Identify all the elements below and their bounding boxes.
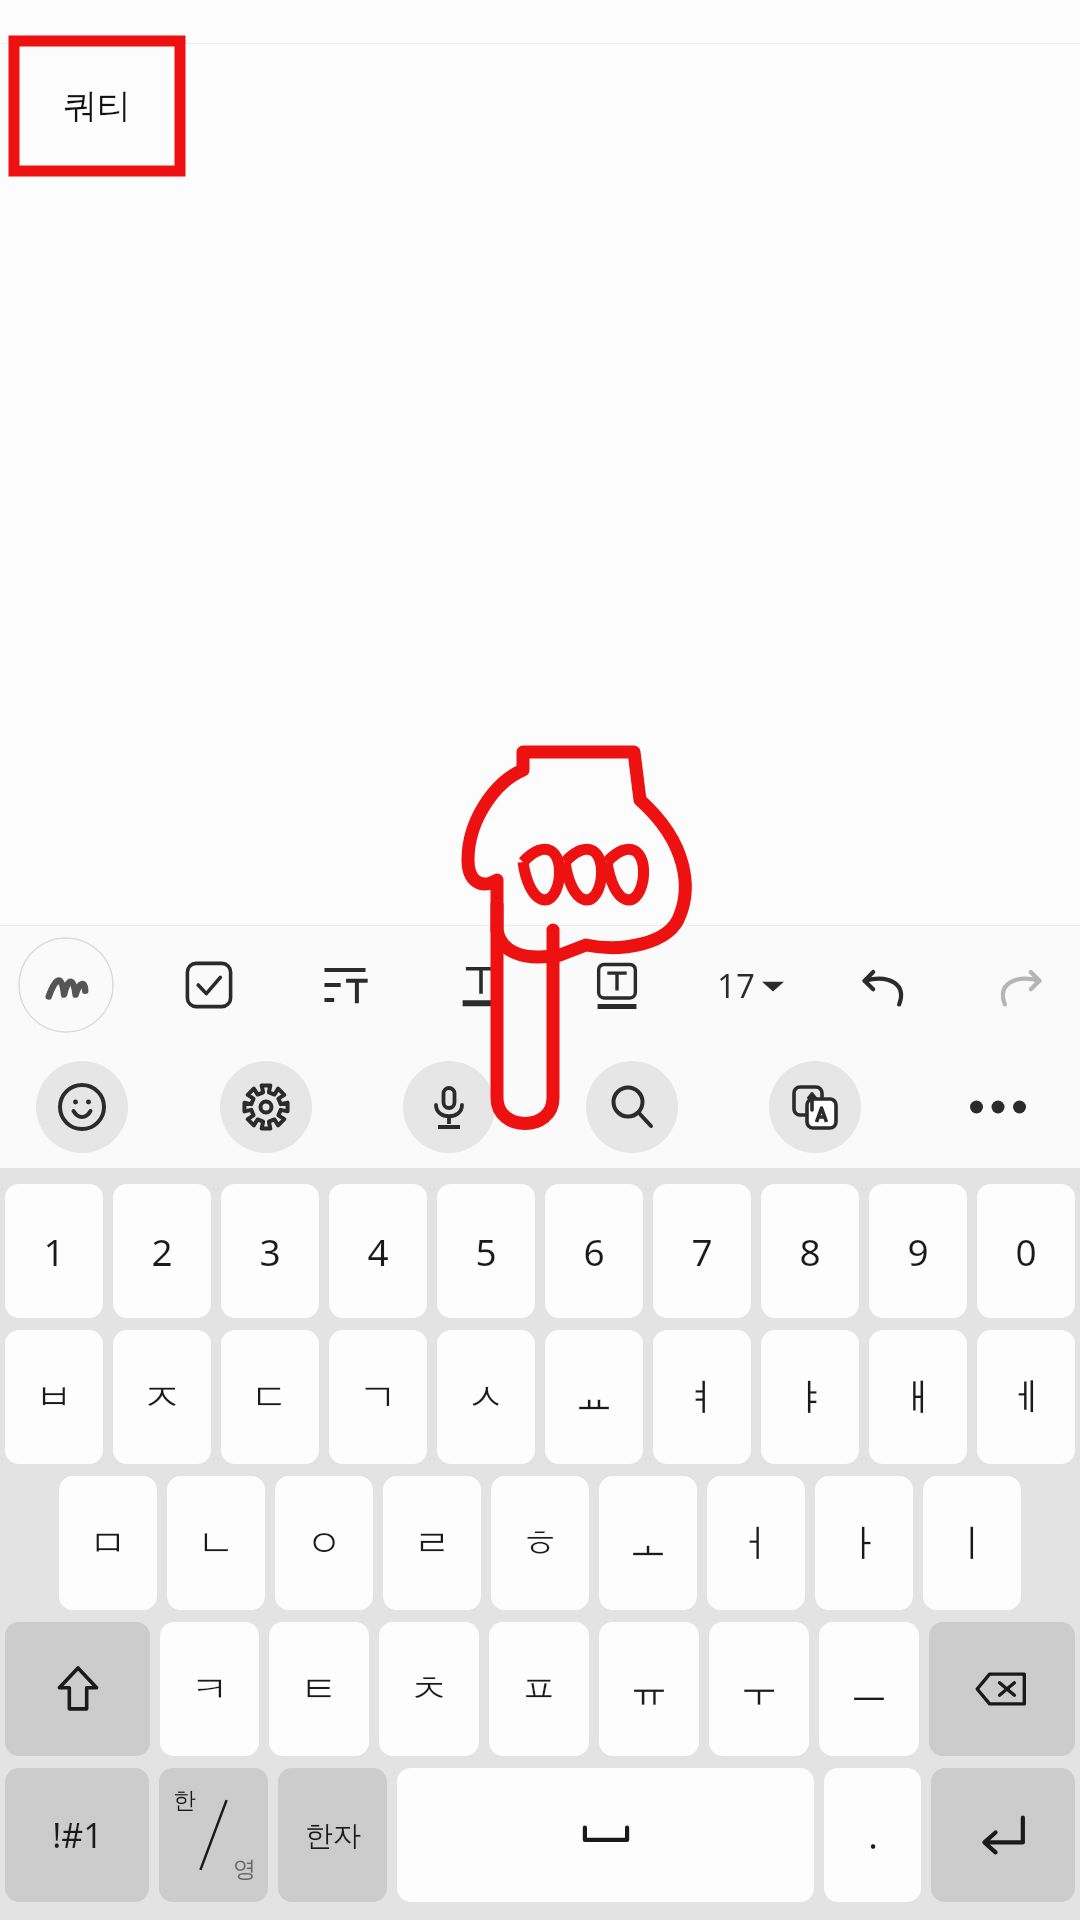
staticText: . [868,1811,878,1860]
staticText: 0 [1015,1226,1037,1276]
staticText: 한자 [305,1818,361,1853]
staticText: ㅛ [575,1373,613,1421]
button[interactable]: . [824,1768,921,1902]
button[interactable]: Translate [769,1061,861,1153]
button[interactable]: ㅇ [275,1476,373,1610]
button[interactable]: Undo [842,943,926,1027]
button[interactable]: ㅜ [709,1622,809,1756]
staticText: ㅁ [89,1519,127,1567]
button[interactable]: Voice input [403,1061,495,1153]
button[interactable]: ㅛ [545,1330,643,1464]
staticText: ㅅ [467,1373,505,1421]
button[interactable]: 3 [221,1184,319,1318]
staticText: ㅂ [35,1373,73,1421]
staticText: ㅌ [300,1665,338,1713]
button[interactable]: ㄷ [221,1330,319,1464]
staticText: 7 [691,1226,713,1276]
staticText: ㅠ [630,1665,668,1713]
button[interactable]: ㅈ [113,1330,211,1464]
staticText: ㄷ [251,1373,289,1421]
button[interactable]: ㄴ [167,1476,265,1610]
button[interactable]: 9 [869,1184,967,1318]
staticText: ㅇ [305,1519,343,1567]
staticText: ㄴ [197,1519,235,1567]
staticText: ㅡ [850,1665,888,1713]
button[interactable]: Settings [220,1061,312,1153]
button[interactable]: ㅁ [59,1476,157,1610]
button[interactable]: ㄹ [383,1476,481,1610]
staticText: ㅔ [1007,1373,1045,1421]
button[interactable]: ㅌ [269,1622,369,1756]
button[interactable]: Search [586,1061,678,1153]
button[interactable]: ㅅ [437,1330,535,1464]
staticText: ㅐ [899,1373,937,1421]
staticText: 4 [367,1226,389,1276]
button[interactable]: ㅠ [599,1622,699,1756]
button[interactable]: ㅏ [815,1476,913,1610]
staticText: ㄹ [413,1519,451,1567]
button[interactable]: ㅗ [599,1476,697,1610]
button[interactable]: ㅓ [707,1476,805,1610]
staticText: 8 [799,1226,821,1276]
button[interactable]: ㅣ [923,1476,1021,1610]
button[interactable]: Redo [978,943,1062,1027]
button[interactable]: Text box [575,943,659,1027]
button[interactable]: Space [397,1768,814,1902]
button[interactable]: Enter [931,1768,1075,1902]
staticText: ㅍ [520,1665,558,1713]
staticText: 1 [43,1226,65,1276]
button[interactable]: 8 [761,1184,859,1318]
button[interactable]: 17 [711,955,790,1016]
staticText: ㅣ [953,1519,991,1567]
staticText: 5 [475,1226,497,1276]
button[interactable]: ㄱ [329,1330,427,1464]
staticText: ㅏ [845,1519,883,1567]
button[interactable]: ㅡ [819,1622,919,1756]
button[interactable]: ㅋ [160,1622,259,1756]
staticText: ㅜ [740,1665,778,1713]
button[interactable]: 0 [977,1184,1075,1318]
button[interactable]: Korean English toggle [159,1768,268,1902]
staticText: 쿼티 [63,85,131,128]
staticText: 17 [717,963,755,1008]
button[interactable]: Paragraph style [303,943,387,1027]
button[interactable]: ㅊ [379,1622,479,1756]
button[interactable]: More options [952,1061,1044,1153]
button[interactable]: ㅐ [869,1330,967,1464]
button[interactable]: Handwriting [18,937,114,1033]
button[interactable]: ㅂ [5,1330,103,1464]
button[interactable]: 한자 [278,1768,387,1902]
staticText: ㅗ [629,1519,667,1567]
button[interactable]: Text style [439,943,523,1027]
staticText: ㄱ [359,1373,397,1421]
staticText: 영 [233,1855,256,1884]
staticText: ㅓ [737,1519,775,1567]
button[interactable]: 4 [329,1184,427,1318]
staticText: 9 [907,1226,929,1276]
button[interactable]: Emoji [36,1061,128,1153]
staticText: ㅕ [683,1373,721,1421]
staticText: 6 [583,1226,605,1276]
staticText: 3 [259,1226,281,1276]
button[interactable]: ㅎ [491,1476,589,1610]
staticText: ㅊ [410,1665,448,1713]
staticText: ㅈ [143,1373,181,1421]
button[interactable]: Shift [5,1622,150,1756]
staticText: 한 [173,1786,196,1815]
staticText: ㅎ [521,1519,559,1567]
button[interactable]: 7 [653,1184,751,1318]
button[interactable]: !#1 [5,1768,149,1902]
button[interactable]: ㅍ [489,1622,589,1756]
button[interactable]: 6 [545,1184,643,1318]
staticText: ㅑ [791,1373,829,1421]
staticText: !#1 [52,1812,103,1858]
button[interactable]: 1 [5,1184,103,1318]
button[interactable]: ㅔ [977,1330,1075,1464]
button[interactable]: Checklist [167,943,251,1027]
button[interactable]: ㅕ [653,1330,751,1464]
staticText: ㅋ [191,1665,229,1713]
button[interactable]: 5 [437,1184,535,1318]
button[interactable]: Backspace [929,1622,1075,1756]
button[interactable]: ㅑ [761,1330,859,1464]
button[interactable]: 2 [113,1184,211,1318]
